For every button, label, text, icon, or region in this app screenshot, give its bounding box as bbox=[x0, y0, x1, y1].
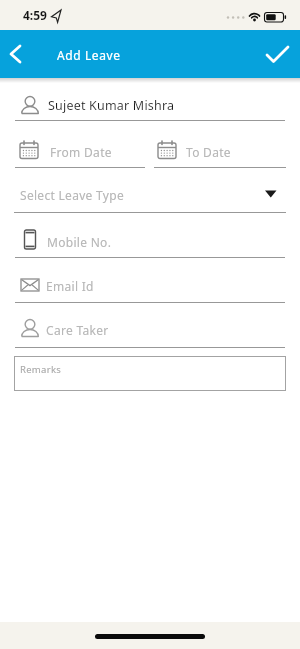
button[interactable]: Email Id bbox=[14, 271, 286, 303]
staticText: Sujeet Kumar Mishra bbox=[48, 97, 175, 114]
button[interactable]: Select Leave Type bbox=[14, 181, 286, 213]
button[interactable]: Remarks bbox=[14, 356, 286, 391]
button[interactable]: Mobile No. bbox=[14, 226, 286, 258]
staticText: 4:59 bbox=[23, 7, 47, 23]
button[interactable]: From Date bbox=[14, 134, 145, 168]
button[interactable] bbox=[2, 40, 30, 68]
button[interactable]: To Date bbox=[154, 134, 286, 168]
staticText: To Date bbox=[186, 144, 231, 160]
button[interactable] bbox=[262, 38, 294, 70]
staticText: Remarks bbox=[20, 363, 62, 376]
staticText: Select Leave Type bbox=[20, 187, 125, 203]
button[interactable]: Sujeet Kumar Mishra bbox=[14, 88, 286, 121]
staticText: Add Leave bbox=[57, 47, 121, 63]
staticText: Email Id bbox=[46, 278, 94, 294]
staticText: Care Taker bbox=[46, 322, 109, 338]
button[interactable]: Care Taker bbox=[14, 316, 286, 348]
staticText: From Date bbox=[50, 144, 112, 160]
staticText: Mobile No. bbox=[47, 234, 112, 250]
